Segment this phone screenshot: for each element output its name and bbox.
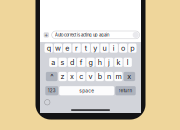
button[interactable]: s [58, 58, 67, 67]
staticText: n [107, 72, 111, 81]
button[interactable]: ^ [46, 72, 57, 81]
staticText: h [98, 58, 102, 67]
button[interactable]: o [119, 43, 127, 53]
staticText: s [61, 58, 65, 67]
button[interactable]: k [114, 58, 122, 67]
button[interactable]: b [96, 72, 104, 81]
staticText: x [70, 72, 74, 81]
button[interactable]: q [44, 43, 53, 53]
staticText: l [127, 58, 129, 67]
staticText: t [85, 44, 87, 52]
staticText: e [65, 44, 69, 52]
staticText: i [113, 44, 115, 52]
button[interactable]: a [49, 58, 57, 67]
button[interactable]: t [82, 43, 90, 53]
button[interactable]: Emoji keyboard [45, 100, 50, 105]
button[interactable]: f [77, 58, 85, 67]
button[interactable]: 123 [45, 86, 58, 95]
staticText: w [55, 44, 61, 52]
button[interactable]: u [100, 43, 109, 53]
button[interactable]: v [86, 72, 95, 81]
staticText: ^ [50, 72, 53, 81]
button[interactable]: z [58, 72, 67, 81]
staticText: g [88, 58, 92, 67]
staticText: f [80, 58, 83, 67]
staticText: return [118, 88, 132, 93]
button[interactable]: m [114, 72, 122, 81]
staticText: m [115, 72, 121, 81]
staticText: + [44, 31, 48, 38]
staticText: r [75, 44, 78, 52]
button[interactable]: c [77, 72, 85, 81]
button[interactable]: p [128, 43, 136, 53]
staticText: c [79, 72, 83, 81]
staticText: o [121, 44, 125, 52]
staticText: z [61, 72, 65, 81]
button[interactable]: e [63, 43, 71, 53]
button[interactable]: w [54, 43, 62, 53]
button[interactable]: i [110, 43, 118, 53]
staticText: a [51, 58, 55, 67]
button[interactable]: return [115, 86, 136, 95]
staticText: x [127, 72, 131, 81]
staticText: k [116, 58, 120, 67]
button[interactable]: l [123, 58, 132, 67]
button[interactable]: j [105, 58, 113, 67]
staticText: v [88, 72, 92, 81]
button[interactable]: n [105, 72, 113, 81]
staticText: space [79, 88, 94, 94]
button[interactable]: r [72, 43, 81, 53]
staticText: y [93, 44, 97, 52]
staticText: Auto correct is acting up again [55, 32, 109, 37]
staticText: d [70, 58, 74, 67]
staticText: p [130, 44, 134, 52]
button[interactable]: d [68, 58, 76, 67]
button[interactable]: Add attachment [44, 31, 49, 38]
button[interactable]: x [68, 72, 76, 81]
button[interactable]: x [123, 72, 135, 81]
staticText: j [108, 58, 110, 67]
staticText: 123 [48, 88, 56, 93]
button[interactable]: g [86, 58, 95, 67]
button[interactable]: h [96, 58, 104, 67]
button[interactable]: space [59, 86, 114, 95]
staticText: b [98, 72, 102, 81]
staticText: q [47, 44, 51, 52]
staticText: u [102, 44, 106, 52]
button[interactable]: y [91, 43, 99, 53]
